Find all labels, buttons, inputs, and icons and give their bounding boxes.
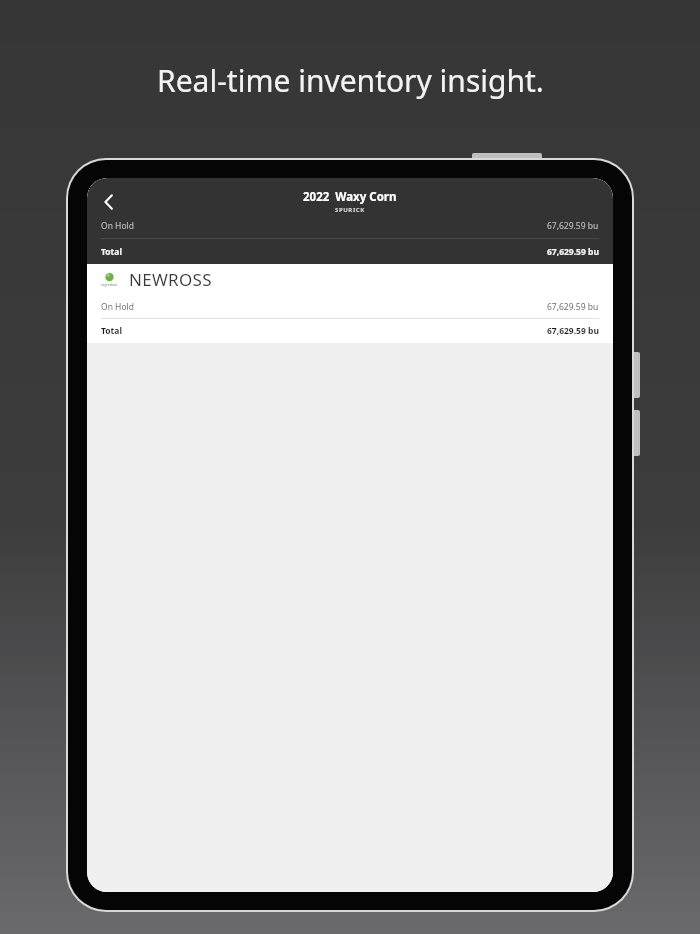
button[interactable]: On Hold [87, 214, 613, 238]
staticText: Total [101, 246, 122, 258]
staticText: 67,629.59 bu [547, 325, 599, 337]
button[interactable]: Total [87, 319, 613, 343]
staticText: On Hold [101, 220, 134, 232]
staticText: ingredion [101, 282, 118, 287]
staticText: NEWROSS [129, 268, 212, 291]
button[interactable]: Total [87, 239, 613, 264]
staticText: 67,629.59 bu [547, 220, 599, 232]
button[interactable]: Back [89, 182, 129, 222]
staticText: 67,629.59 bu [547, 246, 599, 258]
staticText: On Hold [101, 301, 134, 313]
staticText: Real-time inventory insight. [157, 60, 544, 101]
staticText: SPURICK [335, 206, 365, 214]
staticText: Total [101, 325, 122, 337]
staticText: 67,629.59 bu [547, 301, 599, 313]
staticText: 2022 Waxy Corn [303, 189, 397, 205]
button[interactable]: On Hold [87, 295, 613, 318]
button[interactable]: ingredion [87, 264, 613, 295]
